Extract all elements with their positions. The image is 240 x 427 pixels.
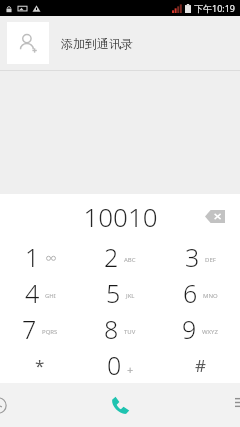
staticText: * (35, 354, 45, 377)
button[interactable]: 9 (160, 311, 240, 347)
button[interactable]: 3 (160, 238, 240, 275)
staticText: PQRS (42, 328, 58, 336)
staticText: WXYZ (202, 328, 218, 336)
staticText: 5 (106, 276, 121, 310)
staticText: 7 (22, 312, 37, 346)
button[interactable]: 6 (160, 275, 240, 311)
staticText: 9 (182, 312, 197, 346)
button[interactable]: 5 (80, 275, 160, 311)
staticText: 6 (183, 276, 198, 310)
staticText: 8 (104, 312, 119, 346)
button[interactable]: 0 (80, 347, 160, 383)
button[interactable]: 8 (80, 311, 160, 347)
staticText: 添加到通讯录 (61, 36, 133, 51)
staticText: MNO (203, 292, 218, 300)
button[interactable]: 2 (80, 238, 160, 275)
staticText: ABC (124, 256, 136, 264)
button[interactable]: 4 (0, 275, 80, 311)
button[interactable]: Backspace (200, 201, 230, 231)
staticText: GHI (45, 292, 56, 300)
button[interactable]: Call history (0, 383, 80, 427)
staticText: DEF (205, 256, 216, 264)
button[interactable]: 7 (0, 311, 80, 347)
staticText: + (127, 362, 134, 377)
staticText: 下午10:19 (194, 2, 236, 14)
staticText: # (195, 354, 206, 377)
staticText: 10010 (83, 199, 158, 234)
staticText: TUV (124, 328, 136, 336)
staticText: 1 (25, 240, 40, 274)
staticText: 4 (25, 276, 40, 310)
staticText: 2 (104, 240, 119, 274)
staticText: JKL (126, 292, 135, 300)
button[interactable]: 添加到通讯录 (0, 16, 240, 70)
staticText: 3 (185, 240, 200, 274)
button[interactable]: Contacts (160, 383, 240, 427)
button[interactable]: 1 (0, 238, 80, 275)
button[interactable]: # (160, 347, 240, 383)
staticText: 0 (107, 348, 122, 382)
button[interactable]: * (0, 347, 80, 383)
button[interactable]: Dial pad (80, 383, 160, 427)
